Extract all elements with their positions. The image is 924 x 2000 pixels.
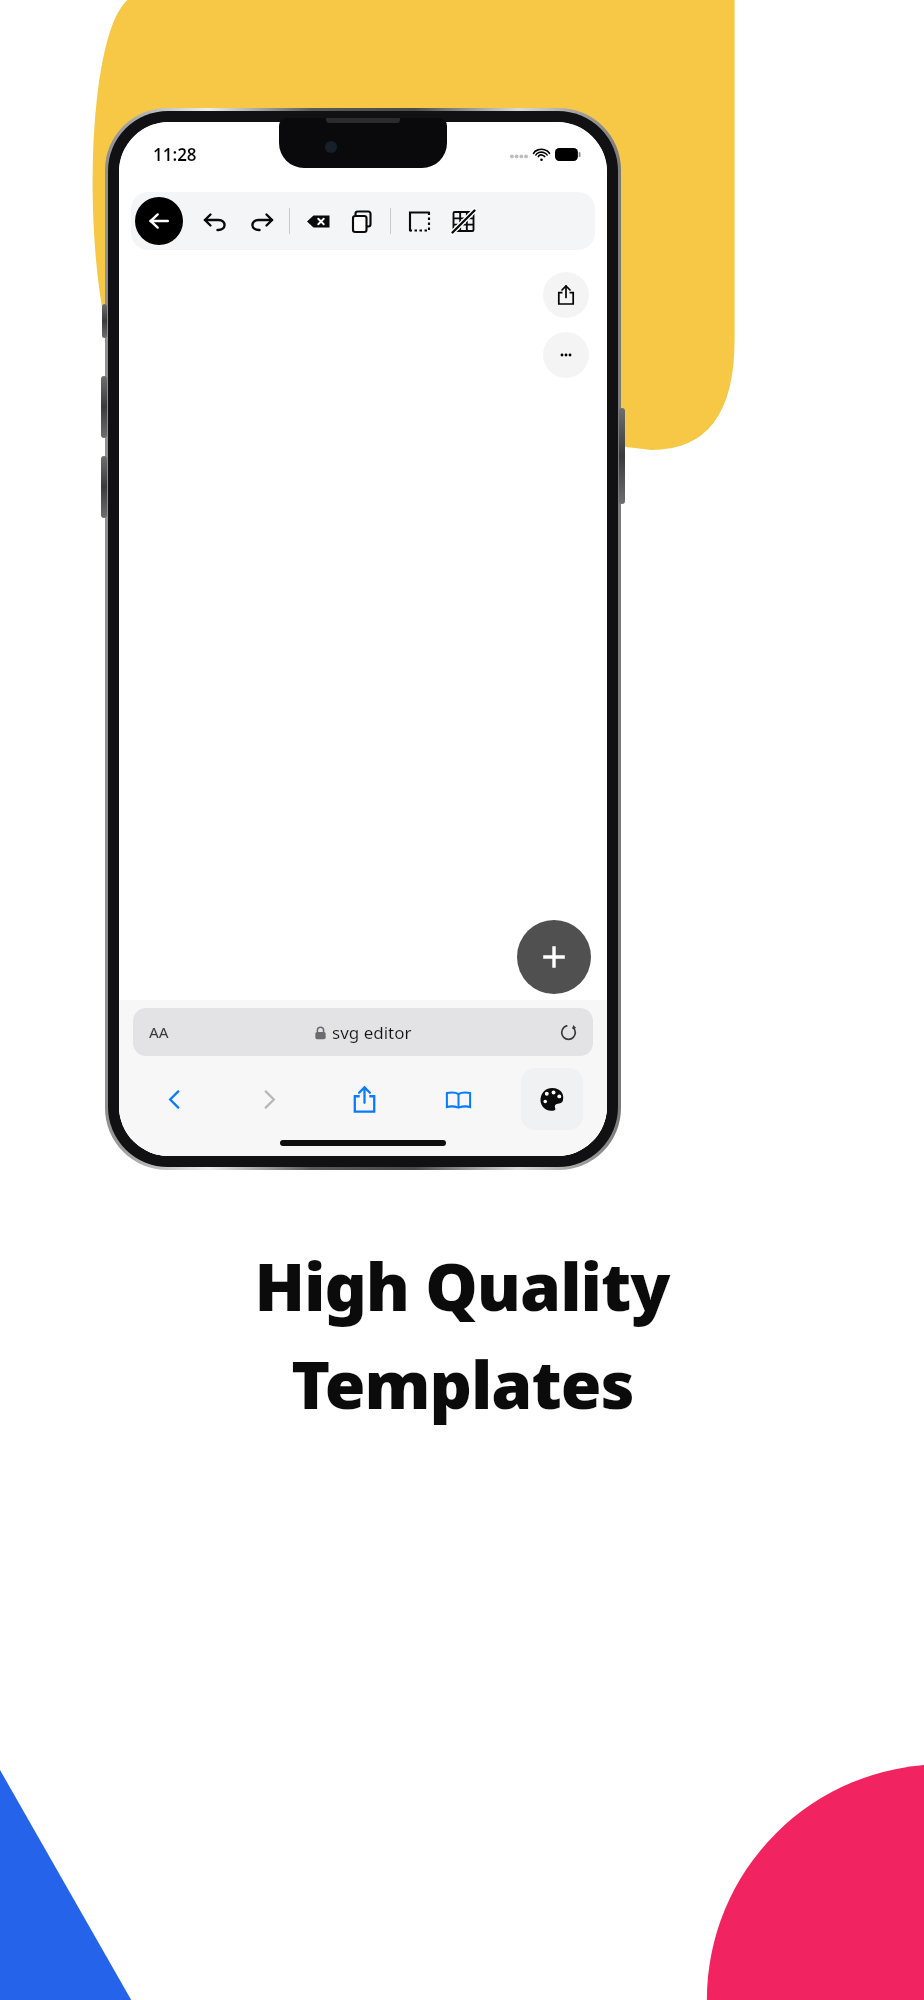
button[interactable]: AA: [133, 1008, 593, 1056]
button[interactable]: Share: [317, 1068, 411, 1130]
button[interactable]: Crop: [401, 203, 437, 239]
staticText: Templates: [291, 1338, 634, 1428]
button[interactable]: Redo: [243, 203, 279, 239]
button[interactable]: Bookmarks: [411, 1068, 505, 1130]
button[interactable]: Back: [135, 197, 183, 245]
button[interactable]: More options: [543, 332, 589, 378]
button[interactable]: Undo: [197, 203, 233, 239]
button[interactable]: Forward: [222, 1068, 317, 1130]
staticText: svg editor: [332, 1021, 412, 1044]
button[interactable]: Toggle grid: [445, 203, 481, 239]
button[interactable]: Duplicate: [344, 203, 380, 239]
button[interactable]: Delete: [300, 203, 336, 239]
staticText: 11:28: [153, 143, 197, 166]
staticText: High Quality: [254, 1240, 670, 1330]
button[interactable]: Add: [517, 920, 591, 994]
button[interactable]: Extensions: [521, 1068, 583, 1130]
button[interactable]: Share: [543, 272, 589, 318]
staticText: AA: [149, 1022, 169, 1042]
button[interactable]: Back: [127, 1068, 222, 1130]
